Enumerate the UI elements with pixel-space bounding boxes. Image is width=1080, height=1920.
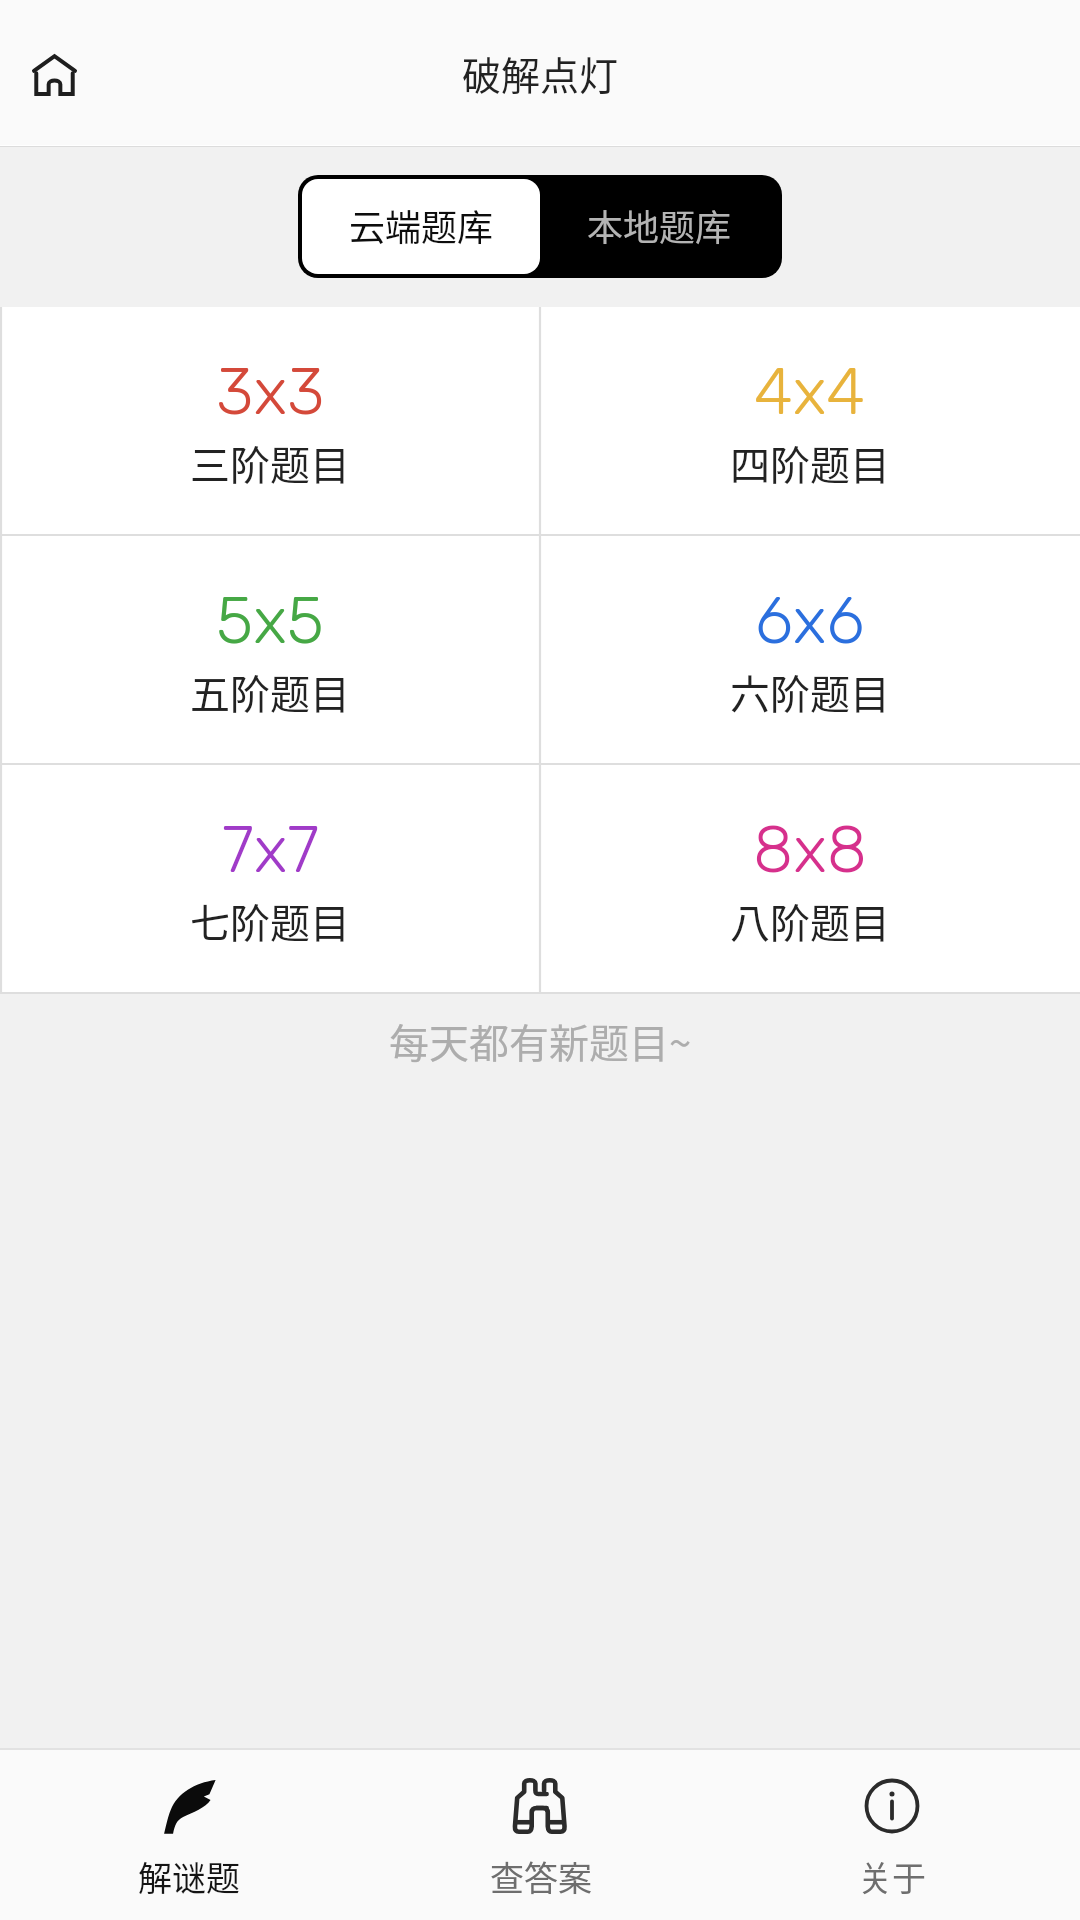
staticText: 6x6 xyxy=(755,582,865,659)
staticText: 四阶题目 xyxy=(730,434,890,492)
staticText: 查答案 xyxy=(490,1852,592,1901)
staticText: 4x4 xyxy=(754,353,866,430)
button[interactable]: 解谜题 xyxy=(13,1750,365,1920)
button[interactable]: 8x8 xyxy=(540,765,1080,994)
staticText: 八阶题目 xyxy=(730,892,890,950)
staticText: 解谜题 xyxy=(138,1852,240,1901)
staticText: 7x7 xyxy=(222,811,319,888)
button[interactable]: Home xyxy=(10,44,98,106)
staticText: 破解点灯 xyxy=(462,45,619,101)
button[interactable]: 5x5 xyxy=(0,536,540,765)
button[interactable]: 查答案 xyxy=(365,1750,716,1920)
staticText: 五阶题目 xyxy=(190,663,350,721)
staticText: 5x5 xyxy=(216,582,325,659)
staticText: 8x8 xyxy=(753,811,868,888)
button[interactable]: 3x3 xyxy=(0,307,540,536)
button[interactable]: 关于 xyxy=(716,1750,1067,1920)
staticText: 3x3 xyxy=(216,353,325,430)
staticText: 三阶题目 xyxy=(190,434,350,492)
staticText: 七阶题目 xyxy=(190,892,350,950)
staticText: 六阶题目 xyxy=(730,663,890,721)
button[interactable]: 6x6 xyxy=(540,536,1080,765)
button[interactable]: 云端题库 xyxy=(302,179,540,274)
staticText: 云端题库 xyxy=(349,199,494,251)
button[interactable]: 本地题库 xyxy=(540,179,778,274)
staticText: 本地题库 xyxy=(587,199,732,251)
staticText: 每天都有新题目~ xyxy=(0,1012,1080,1070)
button[interactable]: 4x4 xyxy=(540,307,1080,536)
staticText: 关于 xyxy=(858,1852,926,1901)
button[interactable]: 7x7 xyxy=(0,765,540,994)
